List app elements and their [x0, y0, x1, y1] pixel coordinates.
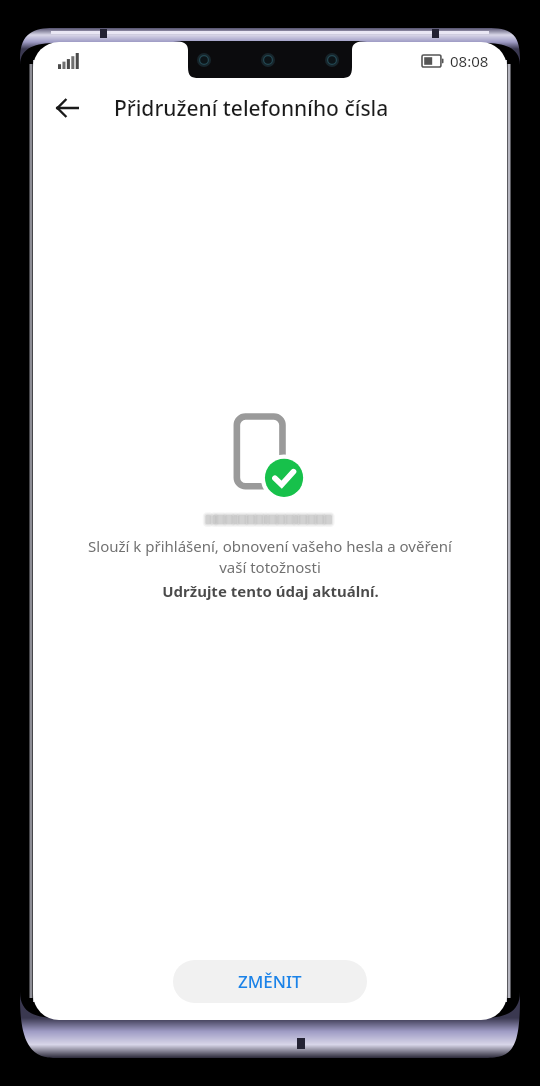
staticText: 08:08 — [450, 51, 489, 71]
staticText: Slouží k přihlášení, obnovení vašeho hes… — [80, 536, 460, 578]
staticText: Udržujte tento údaj aktuální. — [162, 581, 379, 601]
staticText: Přidružení telefonního čísla — [114, 94, 389, 123]
button[interactable]: ZMĚNIT — [173, 960, 367, 1003]
staticText: ZMĚNIT — [238, 970, 302, 993]
button[interactable]: Zpět — [45, 86, 89, 130]
